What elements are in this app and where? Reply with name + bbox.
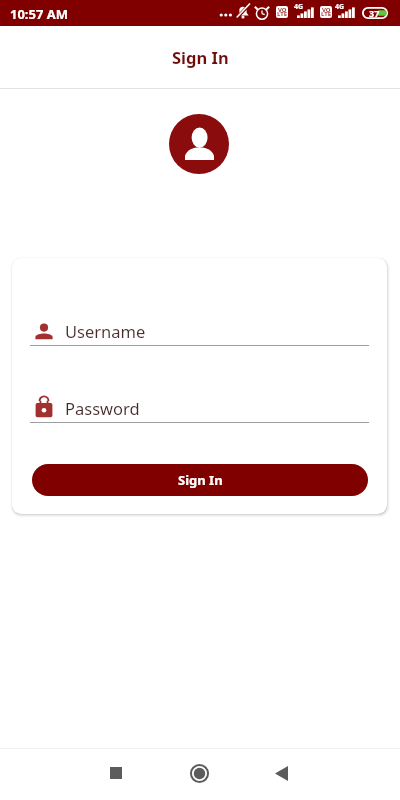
button[interactable]: Password — [12, 395, 387, 420]
staticText: Username — [65, 320, 146, 342]
button[interactable]: Profile picture — [169, 114, 229, 174]
staticText: 4G — [335, 2, 345, 12]
staticText: Password — [65, 397, 140, 419]
staticText: Sign In — [178, 471, 223, 489]
button[interactable]: Sign In — [32, 464, 368, 496]
staticText: 10:57 AM — [10, 5, 69, 23]
button[interactable]: Back — [259, 751, 303, 795]
button[interactable]: Recent apps — [94, 751, 138, 795]
staticText: VO — [278, 6, 287, 14]
staticText: Sign In — [172, 46, 229, 68]
staticText: VO — [322, 6, 331, 14]
staticText: LTE — [321, 10, 332, 18]
staticText: 37 — [369, 7, 380, 19]
button[interactable]: Home — [177, 751, 221, 795]
staticText: 4G — [294, 2, 304, 12]
button[interactable]: Username — [12, 318, 387, 343]
staticText: LTE — [277, 10, 288, 18]
